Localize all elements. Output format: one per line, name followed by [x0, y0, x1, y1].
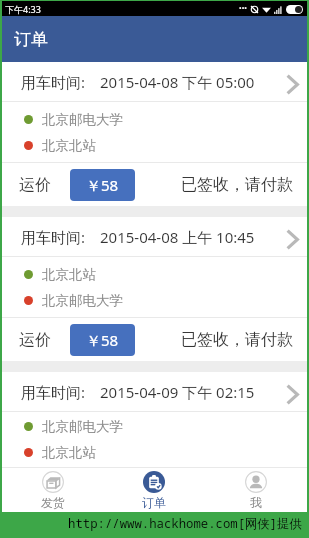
button[interactable]: 订单: [103, 467, 205, 512]
button[interactable]: 用车时间:: [2, 217, 307, 256]
staticText: 我: [250, 495, 262, 510]
staticText: 用车时间:: [21, 72, 86, 92]
staticText: ￥58: [86, 175, 119, 195]
staticText: 订单: [142, 495, 166, 510]
other: 发货: [42, 471, 64, 493]
staticText: 运价: [19, 330, 51, 350]
button[interactable]: 运价: [2, 163, 307, 206]
staticText: 发货: [41, 495, 65, 510]
staticText: 北京邮电大学: [42, 111, 123, 128]
button[interactable]: ￥58: [70, 324, 135, 356]
button[interactable]: 用车时间:: [2, 62, 307, 101]
staticText: 北京邮电大学: [42, 418, 123, 435]
staticText: 北京北站: [42, 266, 96, 283]
staticText: 2015-04-09 下午 02:15: [100, 382, 255, 402]
staticText: 2015-04-08 下午 05:00: [100, 72, 255, 92]
staticText: 已签收，请付款: [181, 330, 293, 350]
staticText: 订单: [14, 29, 48, 50]
other: 我: [245, 471, 267, 493]
staticText: 2015-04-08 上午 10:45: [100, 227, 255, 247]
staticText: 北京北站: [42, 137, 96, 154]
staticText: 运价: [19, 175, 51, 195]
button[interactable]: 发货: [2, 467, 103, 512]
staticText: http://www.hackhome.com[网侠]提供: [68, 515, 302, 532]
button[interactable]: 我: [205, 467, 307, 512]
other: 订单: [143, 471, 165, 493]
button[interactable]: 北京邮电大学: [2, 412, 307, 467]
button[interactable]: 用车时间:: [2, 372, 307, 411]
staticText: ￥58: [86, 330, 119, 350]
button[interactable]: 北京邮电大学: [2, 102, 307, 162]
staticText: 用车时间:: [21, 382, 86, 402]
button[interactable]: 运价: [2, 318, 307, 361]
button[interactable]: 北京北站: [2, 257, 307, 317]
staticText: 北京北站: [42, 444, 96, 461]
button[interactable]: ￥58: [70, 169, 135, 201]
staticText: 下午4:33: [5, 3, 41, 15]
staticText: 已签收，请付款: [181, 175, 293, 195]
staticText: 用车时间:: [21, 227, 86, 247]
staticText: 北京邮电大学: [42, 292, 123, 309]
staticText: •••: [239, 4, 247, 14]
